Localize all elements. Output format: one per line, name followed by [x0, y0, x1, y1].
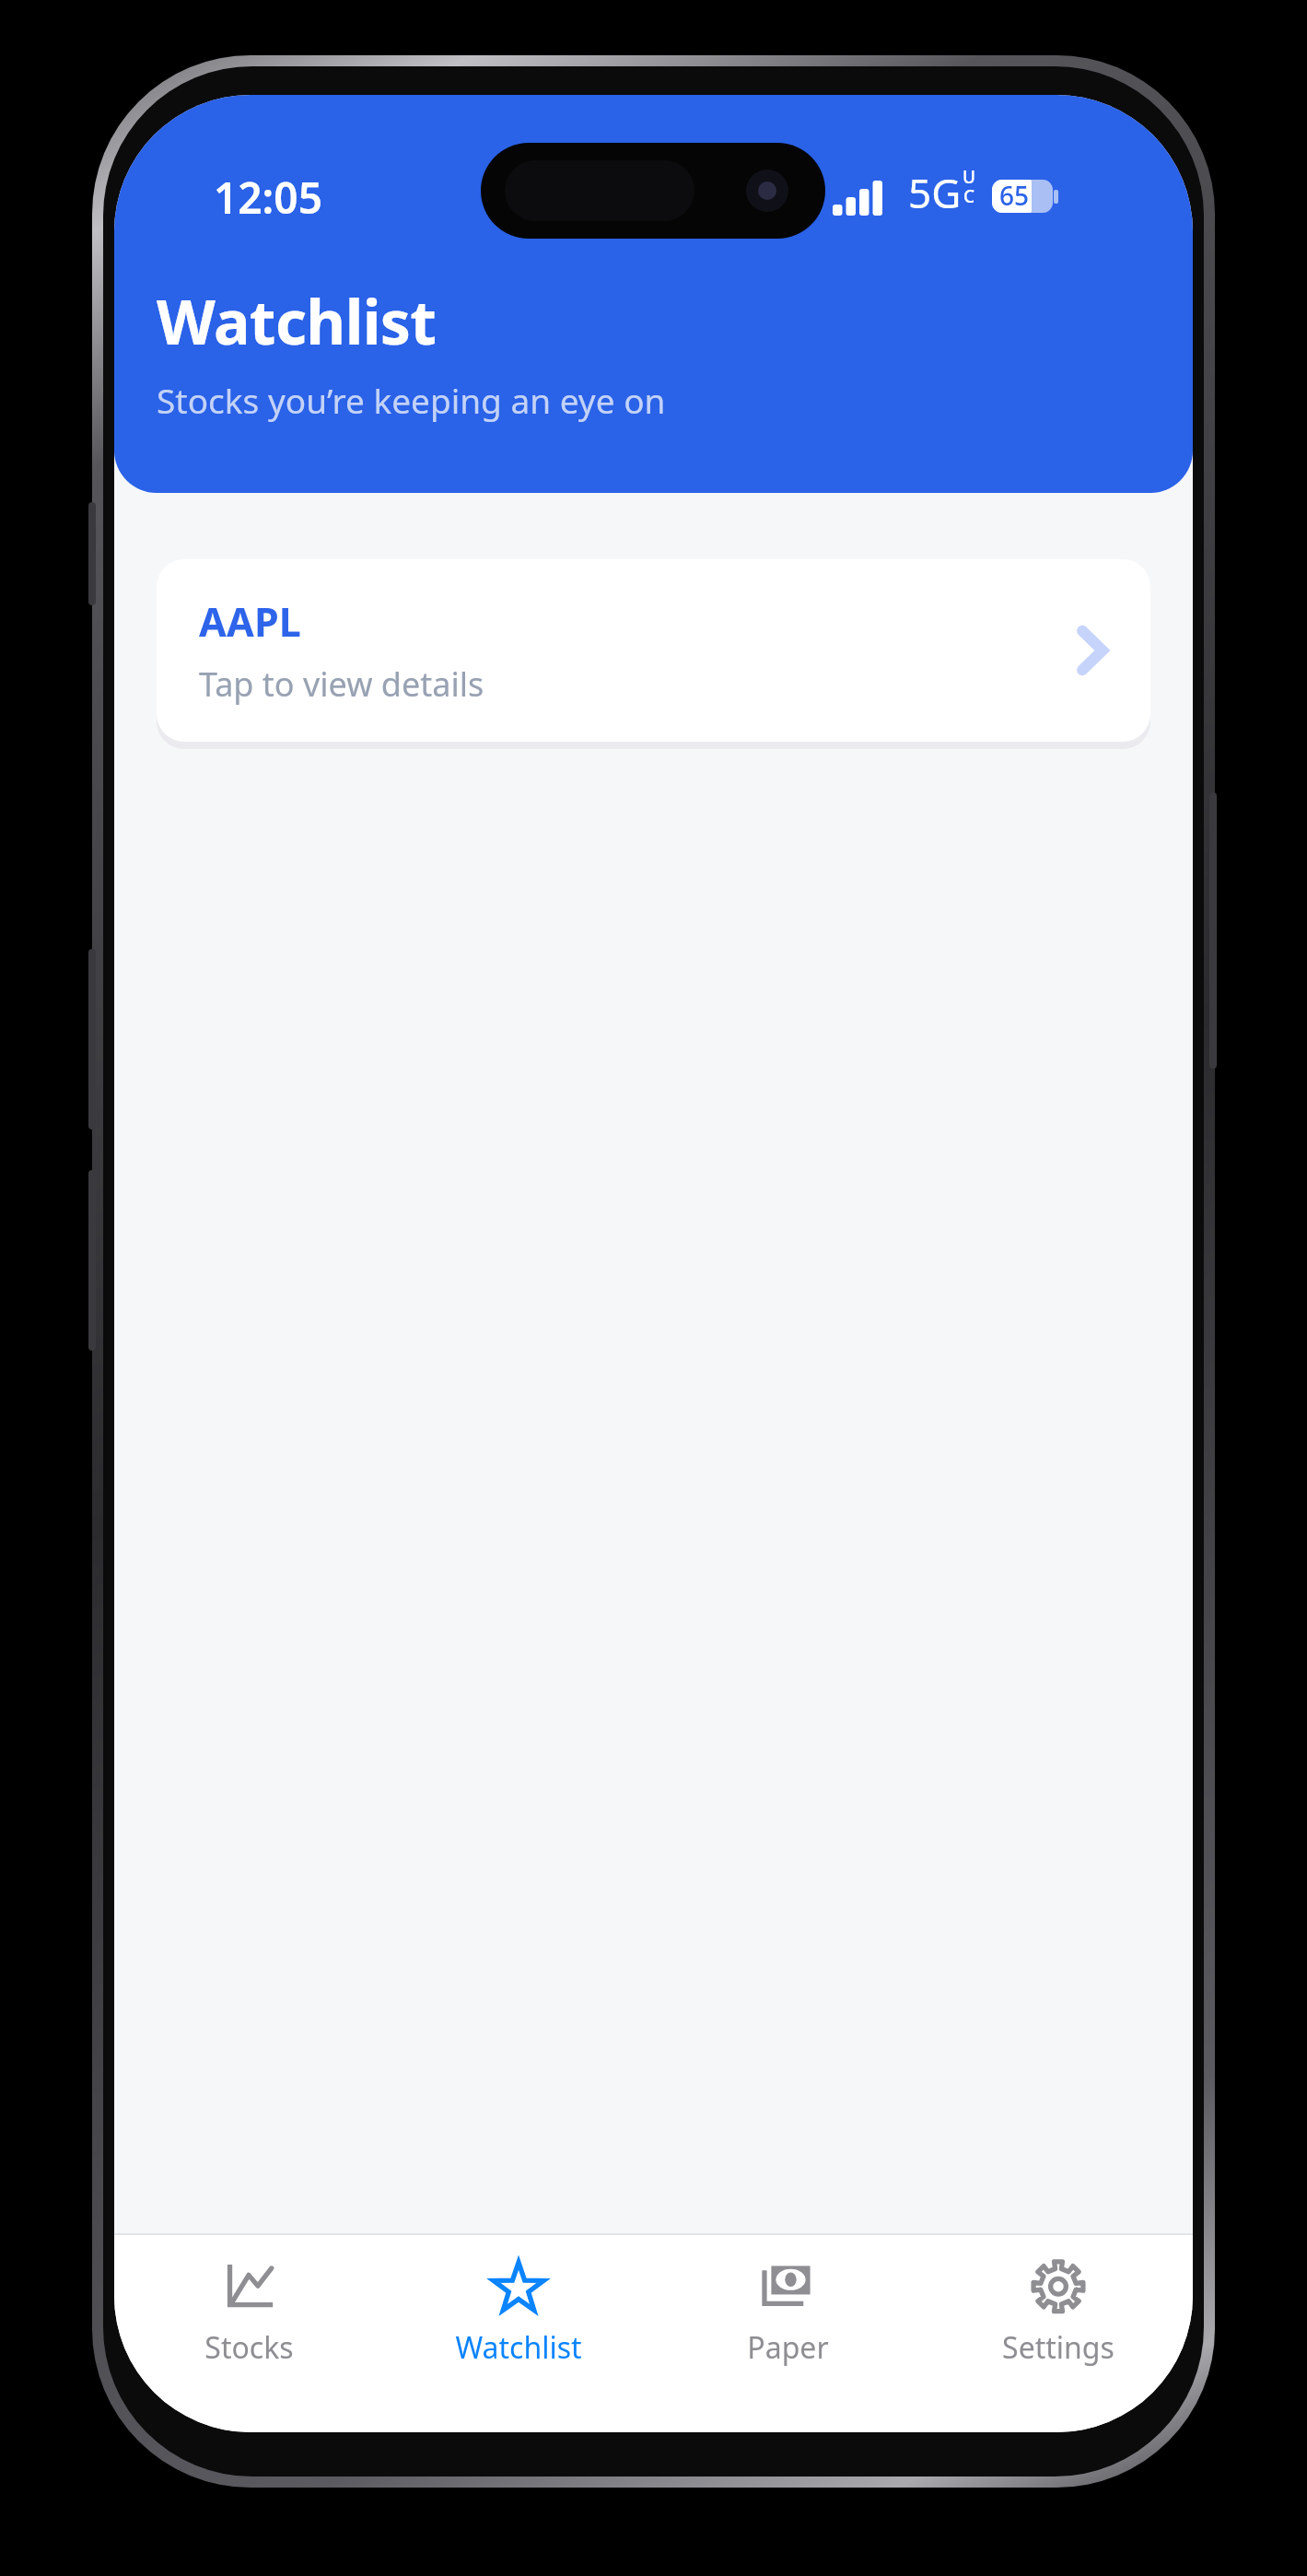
staticText: 65 [999, 178, 1030, 213]
staticText: 12:05 [214, 169, 322, 227]
button[interactable]: Settings [923, 2235, 1193, 2406]
staticText: U [963, 165, 976, 189]
button[interactable]: Watchlist [383, 2235, 653, 2406]
staticText: Stocks you’re keeping an eye on [157, 377, 666, 423]
staticText: 5G [908, 165, 962, 220]
staticText: Watchlist [455, 2327, 582, 2368]
button[interactable]: Stocks [114, 2235, 383, 2406]
staticText: AAPL [199, 594, 302, 649]
staticText: Watchlist [157, 279, 437, 362]
staticText: Settings [1002, 2327, 1114, 2368]
staticText: Paper [747, 2327, 829, 2368]
staticText: C [963, 184, 975, 208]
staticText: Stocks [204, 2327, 294, 2368]
button[interactable]: Paper [653, 2235, 923, 2406]
button[interactable]: AAPL [157, 559, 1150, 742]
staticText: Tap to view details [199, 662, 484, 707]
